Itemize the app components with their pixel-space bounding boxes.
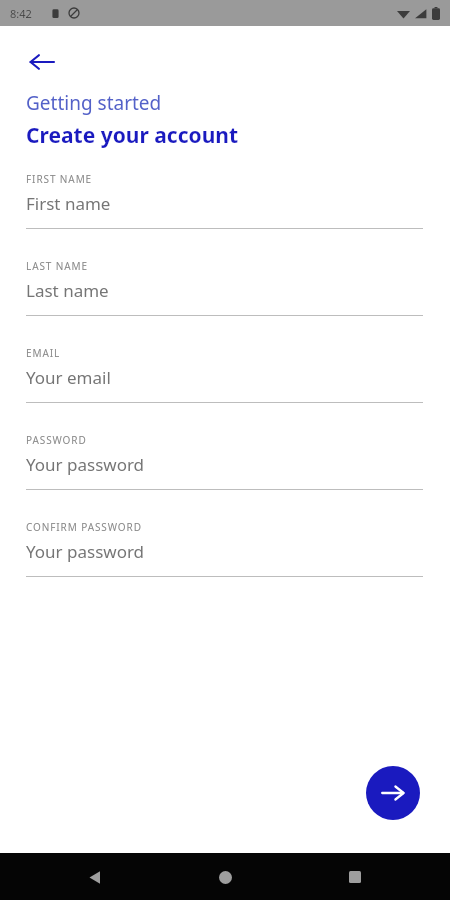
staticText: PASSWORD <box>26 433 87 447</box>
staticText: LAST NAME <box>26 259 88 273</box>
staticText: First name <box>26 192 111 215</box>
button[interactable]: Recent apps <box>333 855 377 899</box>
button[interactable]: Last name <box>0 279 450 305</box>
button[interactable]: Your password <box>0 540 450 566</box>
button[interactable]: Back <box>20 40 64 84</box>
button[interactable]: Continue <box>366 766 420 820</box>
staticText: Your password <box>26 453 145 476</box>
staticText: 8:42 <box>10 6 32 21</box>
button[interactable]: Your password <box>0 453 450 479</box>
staticText: EMAIL <box>26 346 61 360</box>
staticText: Your password <box>26 540 145 563</box>
staticText: Your email <box>26 366 111 389</box>
staticText: Last name <box>26 279 109 302</box>
button[interactable]: Back <box>73 855 117 899</box>
staticText: Getting started <box>26 90 162 116</box>
staticText: Create your account <box>26 121 239 150</box>
staticText: FIRST NAME <box>26 172 93 186</box>
button[interactable]: Your email <box>0 366 450 392</box>
button[interactable]: First name <box>0 192 450 218</box>
button[interactable]: Home <box>203 855 247 899</box>
staticText: CONFIRM PASSWORD <box>26 520 142 534</box>
